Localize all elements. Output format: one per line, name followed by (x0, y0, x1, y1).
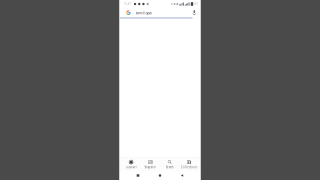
staticText: Snapshot (144, 165, 156, 169)
button[interactable]: Back (171, 171, 193, 180)
button[interactable]: Collections (179, 157, 198, 171)
staticText: 61 (194, 2, 198, 6)
staticText: Discover (126, 165, 137, 169)
button[interactable]: Recents (127, 171, 149, 180)
staticText: 5:41 (124, 2, 131, 6)
button[interactable]: Discover (121, 157, 141, 171)
button[interactable]: Snapshot (141, 157, 160, 171)
button[interactable]: Home (149, 171, 171, 180)
staticText: Collections (181, 165, 197, 169)
staticText: Search (166, 165, 174, 169)
staticText: tamil gaa (135, 10, 151, 15)
button[interactable]: Search (160, 157, 179, 171)
button[interactable]: tamil gaa (119, 8, 200, 18)
